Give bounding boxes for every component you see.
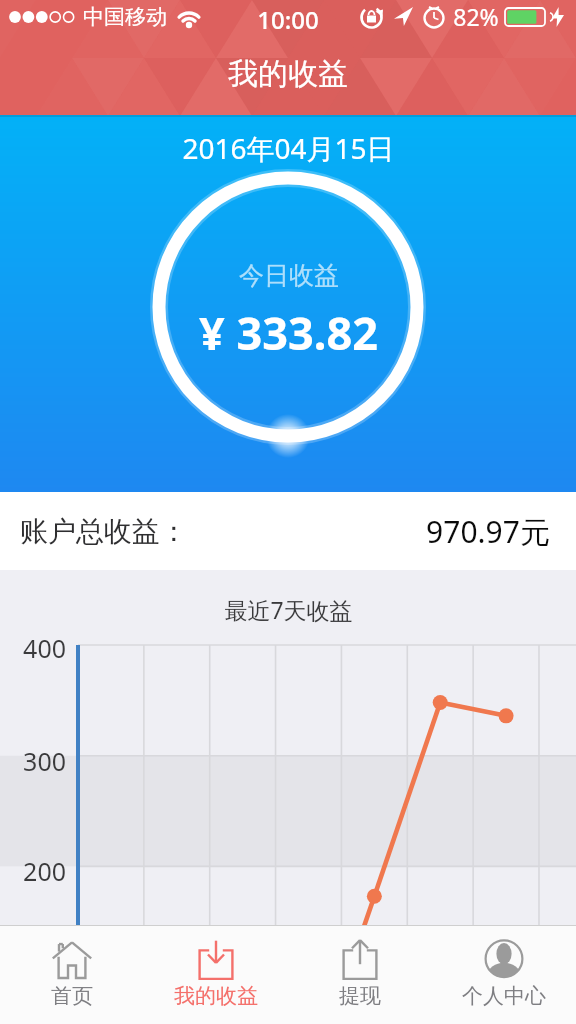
staticText: 400 bbox=[23, 631, 66, 665]
staticText: 970.97元 bbox=[426, 511, 550, 552]
staticText: ¥ 333.82 bbox=[199, 302, 378, 363]
staticText: 300 bbox=[23, 744, 66, 778]
staticText: 10:00 bbox=[257, 3, 319, 33]
button[interactable]: 首页 bbox=[0, 926, 144, 1024]
staticText: 账户总收益： bbox=[20, 514, 188, 549]
staticText: 我的收益 bbox=[174, 983, 258, 1009]
staticText: 个人中心 bbox=[462, 983, 546, 1009]
staticText: 我的收益 bbox=[228, 55, 348, 93]
staticText: 中国移动 bbox=[83, 4, 167, 30]
button[interactable]: 个人中心 bbox=[432, 926, 576, 1024]
staticText: 首页 bbox=[51, 983, 93, 1009]
button[interactable]: 账户总收益： bbox=[20, 492, 550, 570]
button[interactable]: 提现 bbox=[288, 926, 432, 1024]
staticText: 今日收益 bbox=[239, 260, 339, 291]
staticText: 提现 bbox=[339, 983, 381, 1009]
staticText: 2016年04月15日 bbox=[182, 129, 395, 167]
staticText: 200 bbox=[23, 854, 66, 888]
staticText: 82% bbox=[453, 1, 499, 32]
button[interactable]: 我的收益 bbox=[144, 926, 288, 1024]
staticText: 最近7天收益 bbox=[224, 594, 353, 625]
